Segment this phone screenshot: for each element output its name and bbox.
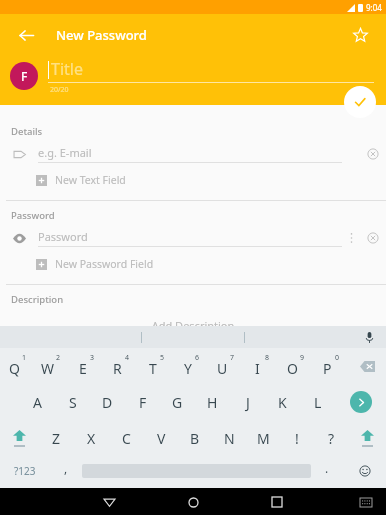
button[interactable]: I [243, 348, 278, 384]
button[interactable]: Clear [360, 140, 386, 168]
button[interactable]: New Password Field [36, 252, 386, 276]
staticText: New Password [56, 26, 147, 44]
staticText: I [255, 359, 260, 378]
staticText: 20/20 [50, 85, 69, 95]
button[interactable]: Q [0, 348, 34, 384]
staticText: ? [328, 429, 335, 448]
staticText: B [190, 429, 200, 448]
staticText: ! [295, 429, 299, 448]
button[interactable]: Password [0, 224, 386, 252]
button[interactable]: Enter [335, 384, 386, 420]
button[interactable]: M [246, 420, 280, 456]
button[interactable]: E [68, 348, 103, 384]
button[interactable]: W [34, 348, 68, 384]
button[interactable]: K [265, 384, 300, 420]
button[interactable]: F [10, 62, 38, 90]
button[interactable]: D [90, 384, 125, 420]
staticText: 6 [195, 353, 200, 363]
button[interactable]: R [103, 348, 138, 384]
button[interactable]: ?123 [0, 456, 50, 486]
staticText: F [139, 393, 147, 412]
staticText: U [217, 359, 228, 378]
staticText: Description [11, 293, 64, 306]
staticText: 4 [125, 353, 130, 363]
button[interactable]: Home [180, 489, 206, 515]
staticText: 9:04 [366, 2, 382, 13]
button[interactable]: V [144, 420, 178, 456]
button[interactable]: Y [173, 348, 208, 384]
button[interactable]: U [208, 348, 243, 384]
button[interactable]: P [313, 348, 348, 384]
button[interactable]: Switch keyboard [356, 492, 376, 512]
button[interactable]: , [50, 456, 82, 486]
staticText: New Text Field [55, 173, 126, 187]
staticText: L [314, 393, 322, 412]
staticText: Add Description [14, 318, 372, 326]
button[interactable]: N [212, 420, 246, 456]
button[interactable]: Recents [264, 489, 290, 515]
staticText: D [102, 393, 113, 412]
staticText: X [87, 429, 96, 448]
button[interactable]: A [20, 384, 55, 420]
staticText: A [33, 393, 42, 412]
button[interactable]: T [138, 348, 173, 384]
staticText: H [207, 393, 218, 412]
staticText: Details [11, 125, 43, 138]
staticText: C [122, 429, 131, 448]
staticText: T [149, 359, 157, 378]
button[interactable]: Back [12, 21, 40, 49]
staticText: 1 [22, 353, 27, 363]
button[interactable]: C [109, 420, 144, 456]
staticText: P [323, 359, 332, 378]
button[interactable]: New Text Field [36, 168, 386, 192]
button[interactable]: L [300, 384, 335, 420]
staticText: 8 [265, 353, 270, 363]
staticText: O [287, 359, 298, 378]
staticText: 2 [56, 353, 61, 363]
button[interactable]: Back [96, 489, 122, 515]
staticText: ?123 [14, 464, 36, 478]
button[interactable]: Add Description [14, 318, 372, 326]
button[interactable]: Z [39, 420, 74, 456]
button[interactable]: e.g. E-mail [0, 140, 386, 168]
staticText: Password [11, 209, 55, 222]
button[interactable]: More options [342, 224, 360, 252]
button[interactable]: ? [314, 420, 348, 456]
staticText: Q [9, 359, 20, 378]
staticText: 9 [300, 353, 305, 363]
staticText: F [21, 68, 28, 84]
button[interactable]: Backspace [348, 348, 386, 384]
button[interactable]: S [55, 384, 90, 420]
button[interactable]: O [278, 348, 313, 384]
button[interactable]: X [74, 420, 109, 456]
button[interactable]: G [160, 384, 195, 420]
button[interactable]: . [311, 456, 343, 486]
staticText: 7 [230, 353, 235, 363]
button[interactable]: Title [48, 58, 374, 82]
button[interactable]: Favorite [346, 21, 374, 49]
button[interactable]: Voice input [360, 328, 378, 346]
button[interactable]: Shift [0, 420, 39, 456]
staticText: . [325, 460, 329, 476]
staticText: J [246, 393, 250, 412]
button[interactable]: F [125, 384, 160, 420]
staticText: V [157, 429, 166, 448]
staticText: Password [38, 229, 88, 244]
staticText: S [69, 393, 77, 412]
button[interactable]: Emoji [343, 456, 386, 486]
button[interactable]: H [195, 384, 230, 420]
staticText: M [257, 429, 270, 448]
button[interactable]: Shift [348, 420, 386, 456]
staticText: 5 [160, 353, 165, 363]
staticText: R [113, 359, 122, 378]
button[interactable]: ! [280, 420, 314, 456]
button[interactable]: Save [344, 86, 376, 118]
staticText: Y [184, 359, 192, 378]
button[interactable]: Clear [360, 224, 386, 252]
staticText: W [41, 359, 55, 378]
button[interactable]: B [178, 420, 212, 456]
button[interactable]: J [230, 384, 265, 420]
staticText: 0 [335, 353, 340, 363]
staticText: e.g. E-mail [38, 145, 92, 160]
